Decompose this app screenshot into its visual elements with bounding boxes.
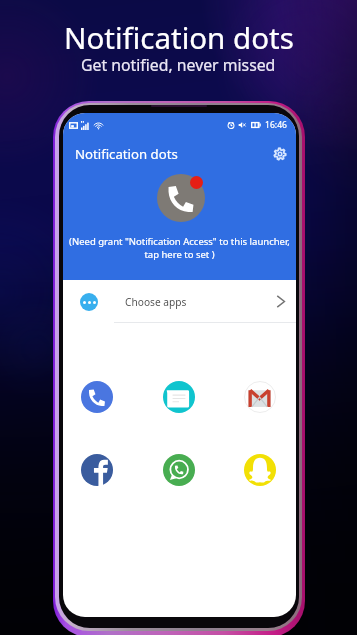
button[interactable]: Facebook — [80, 453, 114, 487]
button[interactable]: Choose apps — [63, 280, 296, 323]
staticText: 16:46 — [265, 119, 287, 131]
button[interactable]: Messages — [162, 380, 196, 414]
staticText: Notification dots — [75, 145, 178, 163]
staticText: Choose apps — [125, 295, 187, 309]
button[interactable]: Gmail — [243, 380, 277, 414]
button[interactable]: Settings — [269, 143, 291, 165]
staticText: Get notified, never missed — [81, 54, 276, 76]
button[interactable]: Snapchat — [243, 453, 277, 487]
button[interactable]: WhatsApp — [162, 453, 196, 487]
staticText: Notification dots — [64, 17, 294, 57]
button[interactable]: Phone — [80, 380, 114, 414]
staticText: (Need grant "Notification Access" to thi… — [63, 235, 296, 261]
